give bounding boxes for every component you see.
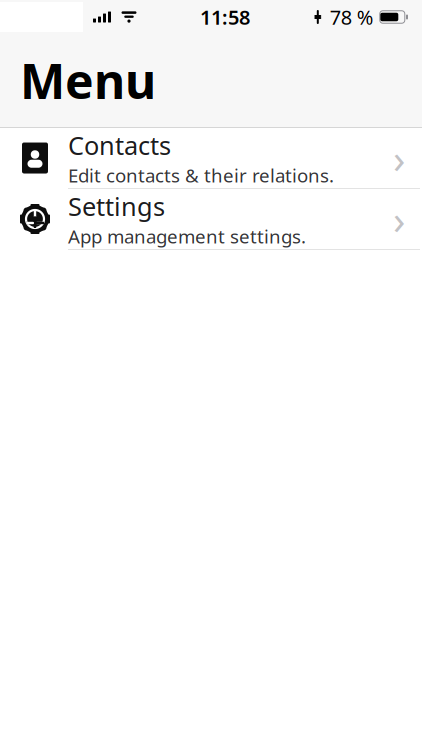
button[interactable]: Contacts (0, 128, 422, 188)
button[interactable]: Settings (0, 189, 422, 249)
staticText: Settings (68, 189, 165, 223)
staticText: Contacts (68, 128, 171, 162)
staticText: Menu (20, 49, 156, 112)
staticText: 78 % (330, 4, 374, 30)
staticText: › (393, 192, 405, 245)
staticText: App management settings. (68, 224, 306, 249)
staticText: Edit contacts & their relations. (68, 163, 334, 188)
staticText: 11:58 (200, 4, 250, 30)
staticText: › (393, 131, 405, 184)
